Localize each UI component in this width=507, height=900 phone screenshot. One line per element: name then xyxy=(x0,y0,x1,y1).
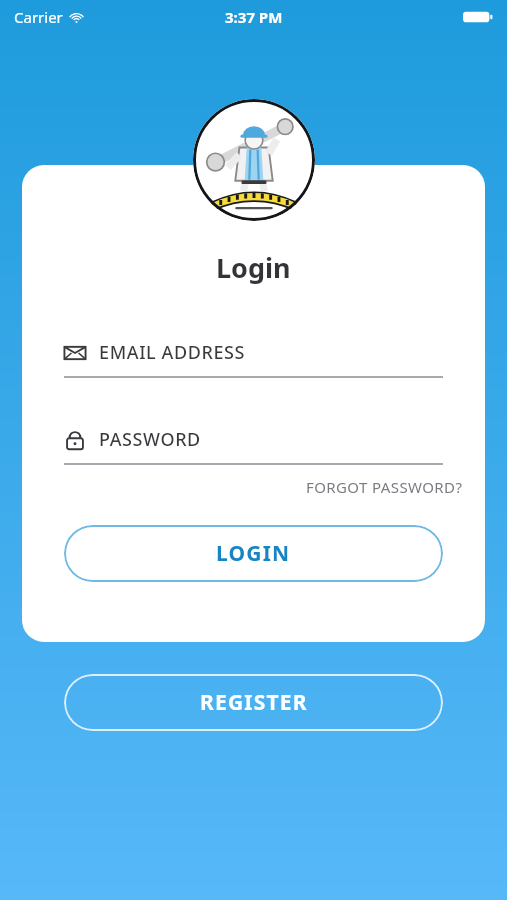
staticText: PASSWORD xyxy=(99,427,201,452)
staticText: LOGIN xyxy=(216,539,291,568)
button[interactable]: FORGOT PASSWORD? xyxy=(304,475,465,499)
staticText: Login xyxy=(216,249,291,286)
staticText: FORGOT PASSWORD? xyxy=(306,477,463,497)
button[interactable]: REGISTER xyxy=(64,674,443,731)
staticText: REGISTER xyxy=(200,688,308,717)
staticText: 3:37 PM xyxy=(225,7,283,27)
button[interactable]: EMAIL ADDRESS xyxy=(22,340,485,378)
staticText: Carrier xyxy=(14,7,63,27)
button[interactable]: LOGIN xyxy=(64,525,443,582)
staticText: EMAIL ADDRESS xyxy=(99,340,246,365)
button[interactable]: PASSWORD xyxy=(22,427,485,465)
other: UA Local 14 logo xyxy=(193,99,315,221)
